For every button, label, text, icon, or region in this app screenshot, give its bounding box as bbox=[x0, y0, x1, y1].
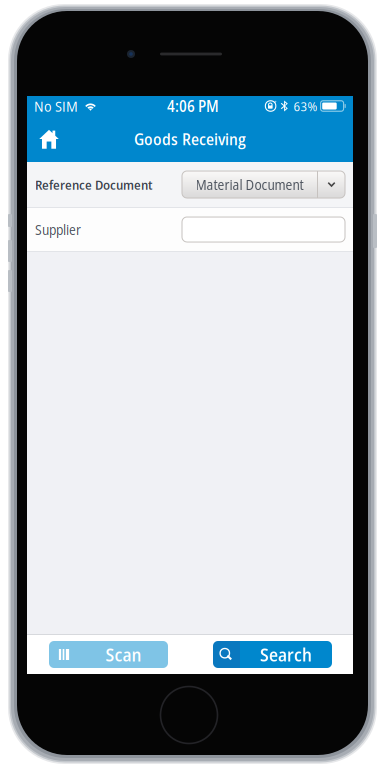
button[interactable]: Scan bbox=[49, 641, 168, 668]
button[interactable]: Supplier input field bbox=[182, 217, 345, 242]
button[interactable]: Material Document bbox=[182, 171, 345, 198]
staticText: Search bbox=[260, 642, 312, 667]
button[interactable]: Search bbox=[213, 641, 332, 668]
staticText: No SIM bbox=[34, 96, 78, 116]
staticText: Supplier bbox=[35, 220, 81, 239]
staticText: Reference Document bbox=[35, 175, 153, 194]
staticText: Scan bbox=[105, 642, 141, 667]
staticText: Material Document bbox=[195, 175, 303, 194]
staticText: 63% bbox=[294, 97, 318, 115]
staticText: 4:06 PM bbox=[167, 96, 219, 116]
button[interactable]: Home bbox=[27, 116, 71, 162]
staticText: Goods Receiving bbox=[134, 128, 246, 150]
